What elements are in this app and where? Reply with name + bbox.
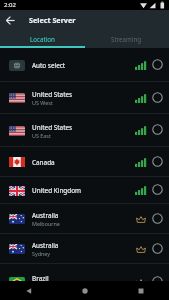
staticText: Select Server [29,15,76,25]
button[interactable]: United States [0,114,169,147]
staticText: United States [32,90,73,99]
staticText: Brazil [32,274,49,283]
staticText: Melbourne [32,220,60,227]
staticText: Auto select [32,61,66,70]
button[interactable]: Australia [0,204,169,234]
button[interactable]: Brazil [0,264,169,300]
button[interactable]: Auto select [0,48,169,82]
button[interactable] [113,281,169,300]
staticText: Australia [32,211,59,220]
staticText: Sydney [32,250,51,257]
staticText: Streaming [111,35,142,43]
staticText: Location [30,35,55,43]
button[interactable]: United States [0,82,169,114]
staticText: 2:02 [4,1,16,9]
button[interactable]: Streaming [84,30,169,48]
button[interactable]: Canada [0,147,169,177]
button[interactable] [57,281,113,300]
staticText: Canada [32,158,55,167]
staticText: US West [32,99,53,106]
button[interactable] [0,10,20,30]
staticText: US East [32,132,51,139]
button[interactable]: United Kingdom [0,177,169,204]
staticText: United Kingdom [32,186,82,195]
button[interactable] [0,281,57,300]
staticText: Australia [32,241,59,250]
button[interactable]: Location [0,30,84,48]
staticText: United States [32,123,73,132]
button[interactable]: Australia [0,234,169,264]
